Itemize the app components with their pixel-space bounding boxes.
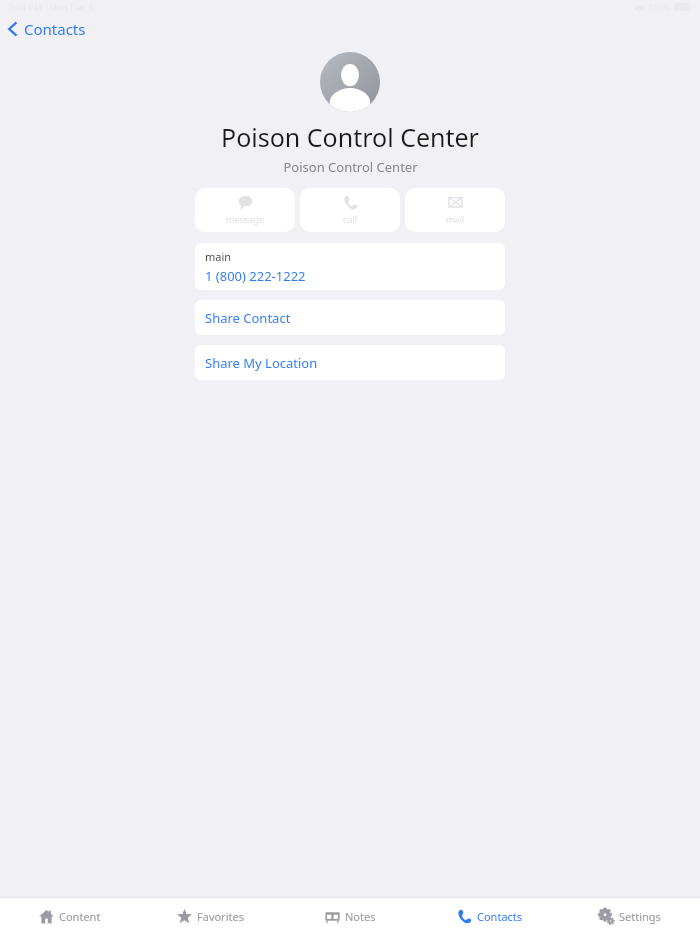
staticText: Favorites — [197, 909, 244, 924]
button[interactable]: message — [195, 188, 295, 232]
staticText: Share My Location — [205, 354, 318, 372]
staticText: Poison Control Center — [283, 158, 418, 176]
button[interactable]: Content — [0, 898, 140, 934]
button[interactable]: Favorites — [140, 898, 280, 934]
staticText: Poison Control Center — [221, 120, 479, 154]
staticText: Notes — [345, 909, 376, 924]
button[interactable]: Share My Location — [195, 345, 505, 380]
staticText: Contacts — [477, 909, 523, 924]
staticText: mail — [446, 213, 465, 225]
staticText: Contacts — [24, 19, 86, 39]
staticText: 1 (800) 222-1222 — [205, 267, 306, 285]
button[interactable]: call — [300, 188, 400, 232]
button[interactable]: main — [195, 243, 505, 290]
button[interactable]: Settings — [560, 898, 700, 934]
staticText: Content — [59, 909, 101, 924]
staticText: main — [205, 249, 232, 264]
button[interactable]: Share Contact — [195, 300, 505, 335]
button[interactable]: Contacts — [0, 14, 700, 44]
staticText: call — [343, 213, 358, 225]
button[interactable]: mail — [405, 188, 505, 232]
staticText: message — [226, 213, 264, 225]
button[interactable]: Contacts — [420, 898, 560, 934]
staticText: Settings — [619, 909, 661, 924]
button[interactable]: Notes — [280, 898, 420, 934]
staticText: Share Contact — [205, 309, 291, 327]
